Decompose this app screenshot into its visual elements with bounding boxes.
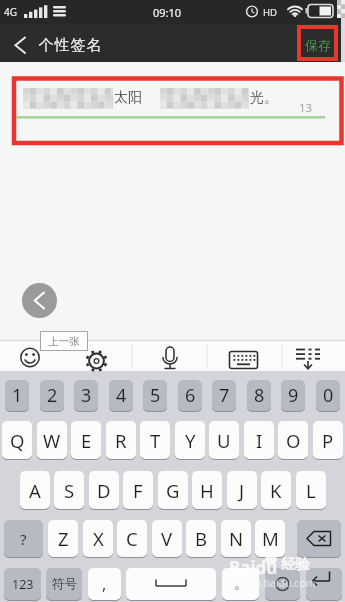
staticText: A: [29, 478, 41, 503]
button[interactable]: Y: [175, 421, 205, 459]
button[interactable]: 符号: [46, 568, 82, 600]
staticText: J: [239, 478, 245, 503]
button[interactable]: L: [296, 471, 326, 509]
button[interactable]: [229, 344, 257, 370]
button[interactable]: 保存: [300, 30, 336, 56]
staticText: 2: [47, 383, 58, 408]
button[interactable]: 123: [4, 568, 41, 600]
button[interactable]: G: [158, 471, 188, 509]
staticText: Q: [10, 428, 25, 453]
staticText: 4: [116, 383, 127, 408]
staticText: ,: [102, 573, 107, 595]
button[interactable]: P: [313, 421, 343, 459]
button[interactable]: C: [117, 520, 147, 557]
staticText: 经验: [281, 555, 310, 573]
button[interactable]: N: [221, 520, 251, 557]
button[interactable]: U: [209, 421, 239, 459]
button[interactable]: [82, 344, 110, 370]
staticText: wan.baidu.com: [240, 576, 316, 590]
staticText: X: [93, 526, 104, 551]
button[interactable]: [16, 344, 44, 370]
button[interactable]: 0: [316, 380, 340, 411]
button[interactable]: ,: [88, 568, 121, 600]
staticText: 符号: [52, 576, 77, 592]
button[interactable]: H: [192, 471, 222, 509]
button[interactable]: Z: [48, 520, 78, 557]
staticText: W: [43, 428, 61, 453]
button[interactable]: 。: [222, 568, 259, 600]
button[interactable]: 3: [74, 380, 98, 411]
staticText: C: [126, 526, 138, 551]
button[interactable]: Q: [2, 421, 32, 459]
staticText: M: [262, 526, 279, 551]
button[interactable]: [306, 568, 342, 600]
staticText: 3: [81, 383, 92, 408]
button[interactable]: [156, 344, 184, 370]
staticText: D: [97, 478, 111, 503]
button[interactable]: V: [152, 520, 182, 557]
button[interactable]: X: [83, 520, 113, 557]
button[interactable]: R: [106, 421, 136, 459]
button[interactable]: [126, 568, 216, 600]
button[interactable]: [294, 344, 322, 370]
button[interactable]: F: [123, 471, 153, 509]
staticText: 9: [288, 383, 299, 408]
staticText: E: [81, 428, 92, 453]
staticText: 。: [234, 575, 248, 593]
button[interactable]: [265, 568, 300, 600]
staticText: 保存: [305, 37, 331, 53]
staticText: 09:10: [153, 5, 182, 20]
button[interactable]: 5: [143, 380, 167, 411]
button[interactable]: 2: [40, 380, 64, 411]
staticText: 123: [12, 576, 34, 593]
staticText: 6: [185, 383, 196, 408]
staticText: 8: [254, 383, 265, 408]
staticText: F: [133, 478, 143, 503]
staticText: HD: [263, 6, 277, 19]
staticText: U: [217, 428, 231, 453]
button[interactable]: W: [37, 421, 67, 459]
button[interactable]: [8, 30, 34, 56]
staticText: 1: [12, 383, 23, 408]
button[interactable]: [297, 520, 341, 557]
button[interactable]: 4: [109, 380, 133, 411]
staticText: 0: [323, 383, 334, 408]
staticText: R: [115, 428, 127, 453]
staticText: Baidu: [229, 556, 278, 579]
staticText: T: [150, 428, 161, 453]
staticText: I: [256, 428, 263, 453]
staticText: B: [195, 526, 208, 551]
staticText: P: [322, 428, 334, 453]
staticText: O: [286, 428, 301, 453]
staticText: 5: [150, 383, 161, 408]
button[interactable]: D: [89, 471, 119, 509]
staticText: 光。: [250, 89, 278, 107]
staticText: 7: [219, 383, 230, 408]
staticText: V: [161, 526, 173, 551]
button[interactable]: M: [255, 520, 285, 557]
staticText: H: [200, 478, 214, 503]
button[interactable]: I: [244, 421, 274, 459]
button[interactable]: 9: [281, 380, 305, 411]
staticText: K: [270, 478, 282, 503]
button[interactable]: 1: [5, 380, 29, 411]
button[interactable]: S: [54, 471, 84, 509]
button[interactable]: T: [140, 421, 170, 459]
button[interactable]: 6: [178, 380, 202, 411]
button[interactable]: O: [278, 421, 308, 459]
button[interactable]: [22, 283, 57, 318]
staticText: L: [306, 478, 316, 503]
staticText: 13: [299, 100, 313, 116]
staticText: N: [229, 526, 244, 551]
button[interactable]: K: [261, 471, 291, 509]
button[interactable]: J: [227, 471, 257, 509]
button[interactable]: E: [71, 421, 101, 459]
button[interactable]: ?: [4, 520, 43, 557]
button[interactable]: B: [186, 520, 216, 557]
button[interactable]: 7: [212, 380, 236, 411]
staticText: G: [166, 478, 180, 503]
button[interactable]: 8: [247, 380, 271, 411]
staticText: 上一张: [48, 335, 80, 348]
staticText: 太阳: [114, 89, 142, 107]
button[interactable]: A: [20, 471, 50, 509]
